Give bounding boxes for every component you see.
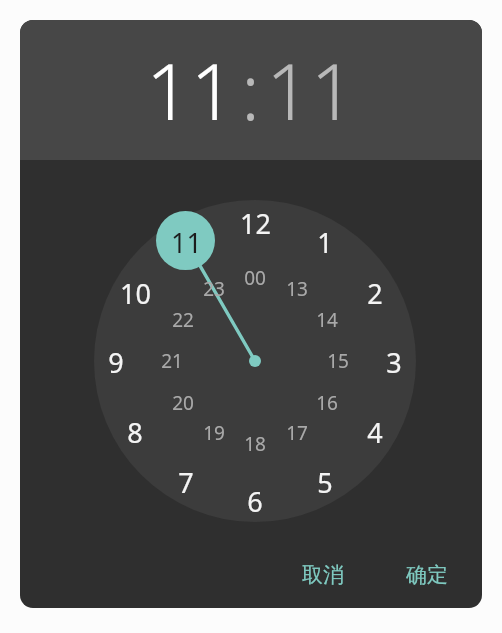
staticText: 10 xyxy=(120,275,151,309)
staticText: 9 xyxy=(108,344,124,378)
staticText: 16 xyxy=(316,390,338,416)
staticText: 8 xyxy=(127,414,143,448)
staticText: 11 xyxy=(171,224,202,258)
staticText: 取消 xyxy=(302,562,344,588)
staticText: 1 xyxy=(317,224,333,258)
staticText: 23 xyxy=(203,276,225,302)
staticText: 11 xyxy=(146,37,236,143)
staticText: 19 xyxy=(203,420,225,446)
staticText: 6 xyxy=(247,483,263,517)
button[interactable]: 确定 xyxy=(394,554,460,596)
staticText: 5 xyxy=(317,464,333,498)
staticText: 3 xyxy=(386,344,402,378)
staticText: 11 xyxy=(266,37,356,143)
staticText: 7 xyxy=(178,464,194,498)
staticText: 22 xyxy=(172,307,194,333)
staticText: 17 xyxy=(286,420,308,446)
staticText: 4 xyxy=(367,414,383,448)
staticText: 21 xyxy=(161,348,183,374)
staticText: : xyxy=(241,37,261,143)
button[interactable]: 11 xyxy=(266,37,356,143)
staticText: 20 xyxy=(172,390,194,416)
staticText: 确定 xyxy=(406,562,448,588)
staticText: 18 xyxy=(244,431,266,457)
staticText: 13 xyxy=(286,276,308,302)
button[interactable]: 取消 xyxy=(290,554,356,596)
staticText: 15 xyxy=(327,348,349,374)
staticText: 2 xyxy=(367,275,383,309)
staticText: 00 xyxy=(244,265,266,291)
button[interactable]: Clock dial, hour 11 selected xyxy=(20,160,482,542)
button[interactable]: 11 xyxy=(146,37,236,143)
staticText: 14 xyxy=(316,307,338,333)
staticText: 12 xyxy=(240,205,271,239)
